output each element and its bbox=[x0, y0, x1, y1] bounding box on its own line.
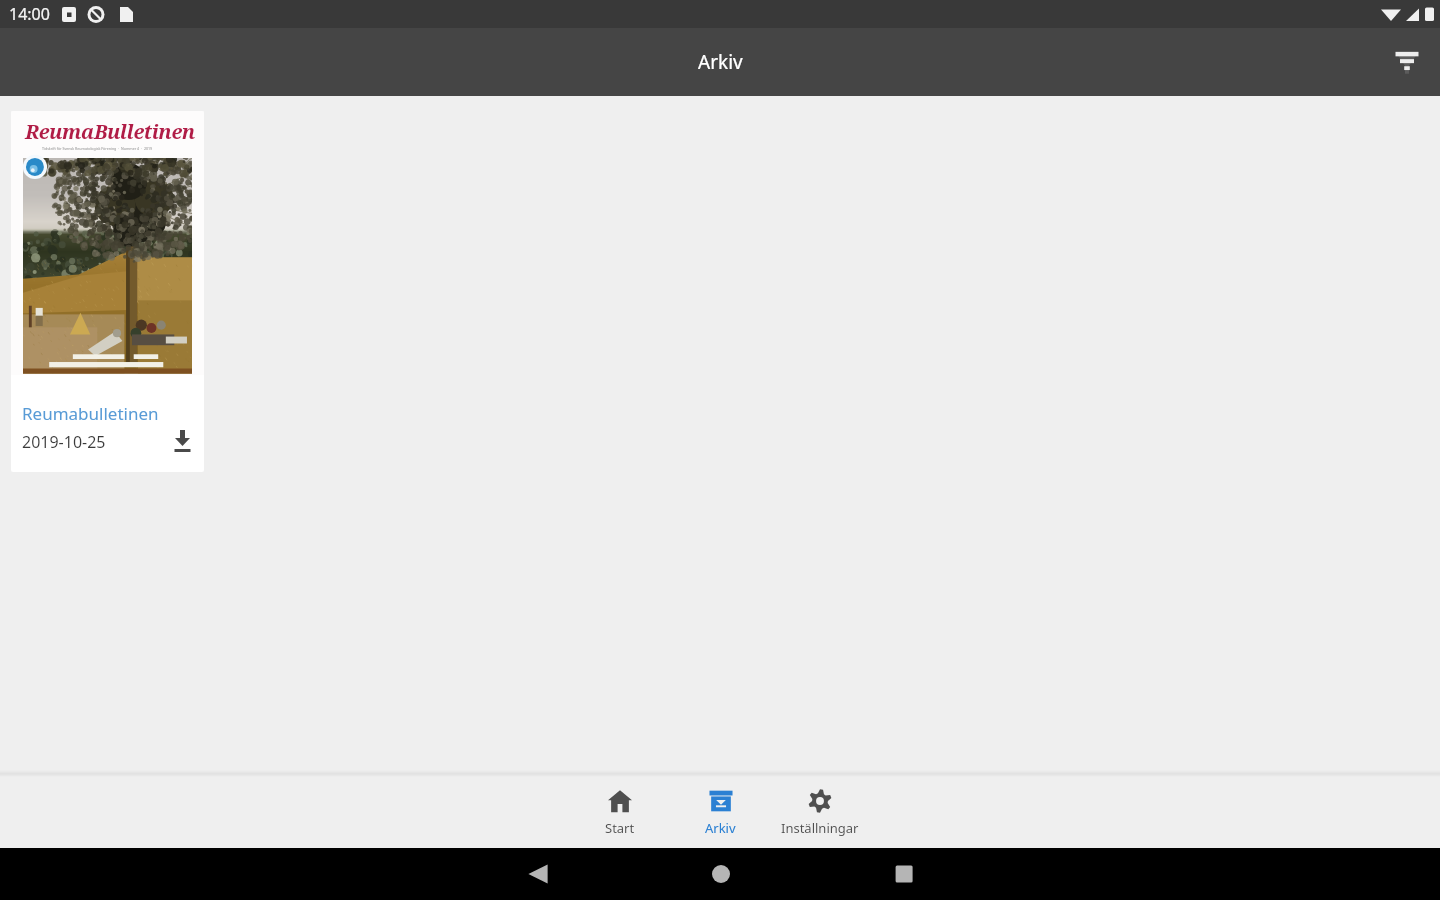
staticText: Tidskrift för Svensk Reumatologisk Fören… bbox=[42, 146, 153, 151]
staticText: Arkiv bbox=[698, 49, 743, 75]
button[interactable]: Home bbox=[629, 848, 812, 900]
staticText: 14:00 bbox=[9, 3, 50, 25]
button[interactable]: Inställningar bbox=[770, 770, 870, 848]
button[interactable]: Back bbox=[446, 848, 629, 900]
button[interactable]: Download bbox=[160, 419, 204, 463]
button[interactable]: ReumaBulletinen bbox=[11, 111, 204, 472]
button[interactable]: Arkiv bbox=[670, 770, 770, 848]
button[interactable]: Start bbox=[570, 770, 670, 848]
staticText: ReumaBulletinen bbox=[25, 118, 195, 145]
button[interactable]: Recent apps bbox=[812, 848, 995, 900]
staticText: Inställningar bbox=[781, 819, 859, 837]
staticText: 2019-10-25 bbox=[22, 431, 106, 453]
button[interactable]: Filter bbox=[1383, 38, 1431, 86]
staticText: Start bbox=[605, 819, 635, 837]
staticText: Reumabulletinen bbox=[22, 402, 159, 425]
staticText: Arkiv bbox=[705, 819, 736, 837]
